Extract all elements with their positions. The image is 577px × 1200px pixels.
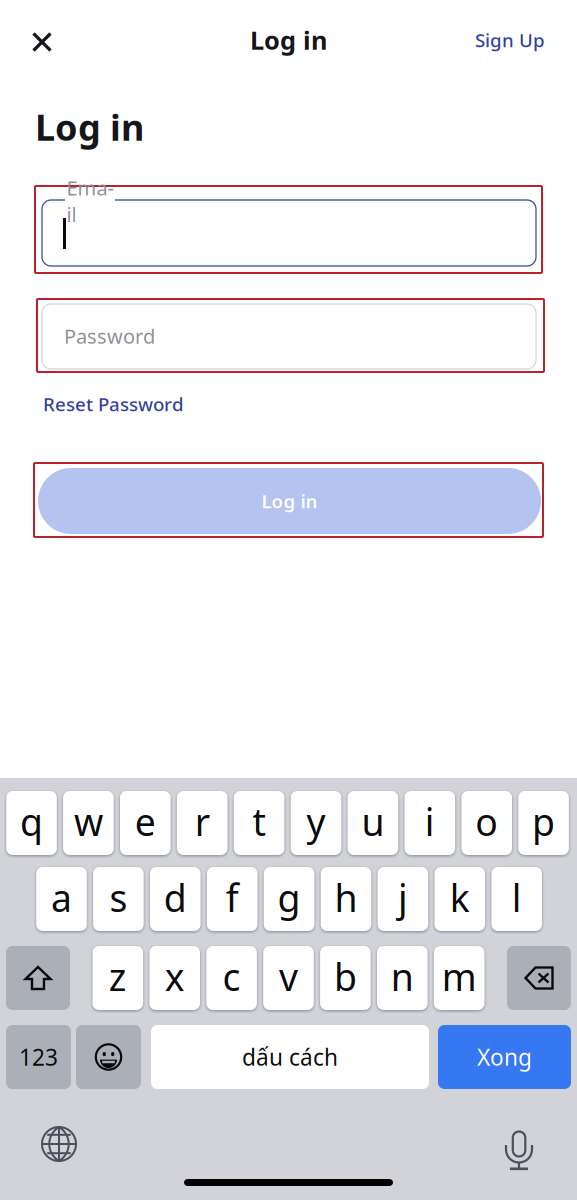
button[interactable]: i <box>404 791 455 855</box>
staticText: b <box>334 952 357 1001</box>
button[interactable]: n <box>377 946 428 1010</box>
staticText: i <box>425 797 435 846</box>
button[interactable]: x <box>149 946 200 1010</box>
button[interactable]: Reset Password <box>43 394 184 414</box>
staticText: r <box>195 797 210 846</box>
button[interactable]: z <box>92 946 143 1010</box>
staticText: t <box>253 797 266 846</box>
button[interactable]: Sign Up <box>470 25 550 55</box>
staticText: l <box>512 873 522 922</box>
button[interactable]: Delete <box>507 946 571 1010</box>
staticText: Sign Up <box>475 28 545 52</box>
button[interactable]: p <box>518 791 569 855</box>
button[interactable]: s <box>93 867 144 931</box>
staticText: z <box>109 952 127 1001</box>
button[interactable]: t <box>234 791 284 855</box>
button[interactable]: Close <box>20 20 64 64</box>
staticText: a <box>51 873 72 922</box>
button[interactable]: b <box>320 946 371 1010</box>
staticText: m <box>442 952 477 1001</box>
button[interactable]: f <box>207 867 257 931</box>
staticText: v <box>279 952 298 1001</box>
button[interactable]: m <box>434 946 484 1010</box>
staticText: Email <box>66 174 113 227</box>
staticText: q <box>20 797 43 846</box>
button[interactable]: v <box>263 946 314 1010</box>
staticText: u <box>361 797 384 846</box>
button[interactable]: Next keyboard <box>37 1122 81 1166</box>
staticText: Log in <box>250 23 327 57</box>
button[interactable]: w <box>63 791 114 855</box>
staticText: j <box>398 873 408 922</box>
staticText: w <box>74 797 103 846</box>
button[interactable]: j <box>378 867 428 931</box>
button[interactable]: o <box>461 791 512 855</box>
staticText: s <box>109 873 127 922</box>
staticText: Xong <box>477 1042 532 1072</box>
button[interactable]: 123 <box>6 1025 71 1089</box>
button[interactable]: u <box>348 791 398 855</box>
button[interactable]: Emoji <box>76 1025 141 1089</box>
staticText: h <box>334 873 357 922</box>
staticText: x <box>165 952 185 1001</box>
button[interactable]: Xong <box>438 1025 571 1089</box>
button[interactable]: Dictation <box>497 1122 541 1166</box>
staticText: dấu cách <box>242 1042 338 1072</box>
staticText: k <box>450 873 470 922</box>
staticText: Password <box>64 323 155 349</box>
button[interactable]: r <box>177 791 227 855</box>
button[interactable]: h <box>321 867 371 931</box>
staticText: e <box>135 797 156 846</box>
button[interactable]: d <box>150 867 201 931</box>
staticText: Log in <box>35 103 144 151</box>
staticText: Log in <box>261 489 317 513</box>
staticText: y <box>306 797 325 846</box>
button[interactable]: k <box>434 867 485 931</box>
button[interactable]: Shift <box>6 946 70 1010</box>
button[interactable]: g <box>264 867 314 931</box>
button[interactable]: q <box>6 791 57 855</box>
button[interactable]: c <box>206 946 257 1010</box>
staticText: c <box>223 952 241 1001</box>
button[interactable]: a <box>36 867 87 931</box>
staticText: g <box>278 873 301 922</box>
button[interactable]: l <box>491 867 542 931</box>
button[interactable]: y <box>291 791 341 855</box>
staticText: 123 <box>19 1042 58 1072</box>
staticText: Reset Password <box>43 392 184 416</box>
staticText: p <box>532 797 555 846</box>
staticText: n <box>391 952 414 1001</box>
staticText: o <box>475 797 498 846</box>
button[interactable]: Log in <box>38 468 541 534</box>
staticText: d <box>164 873 187 922</box>
button[interactable]: dấu cách <box>151 1025 429 1089</box>
button[interactable]: e <box>120 791 171 855</box>
staticText: f <box>226 873 239 922</box>
